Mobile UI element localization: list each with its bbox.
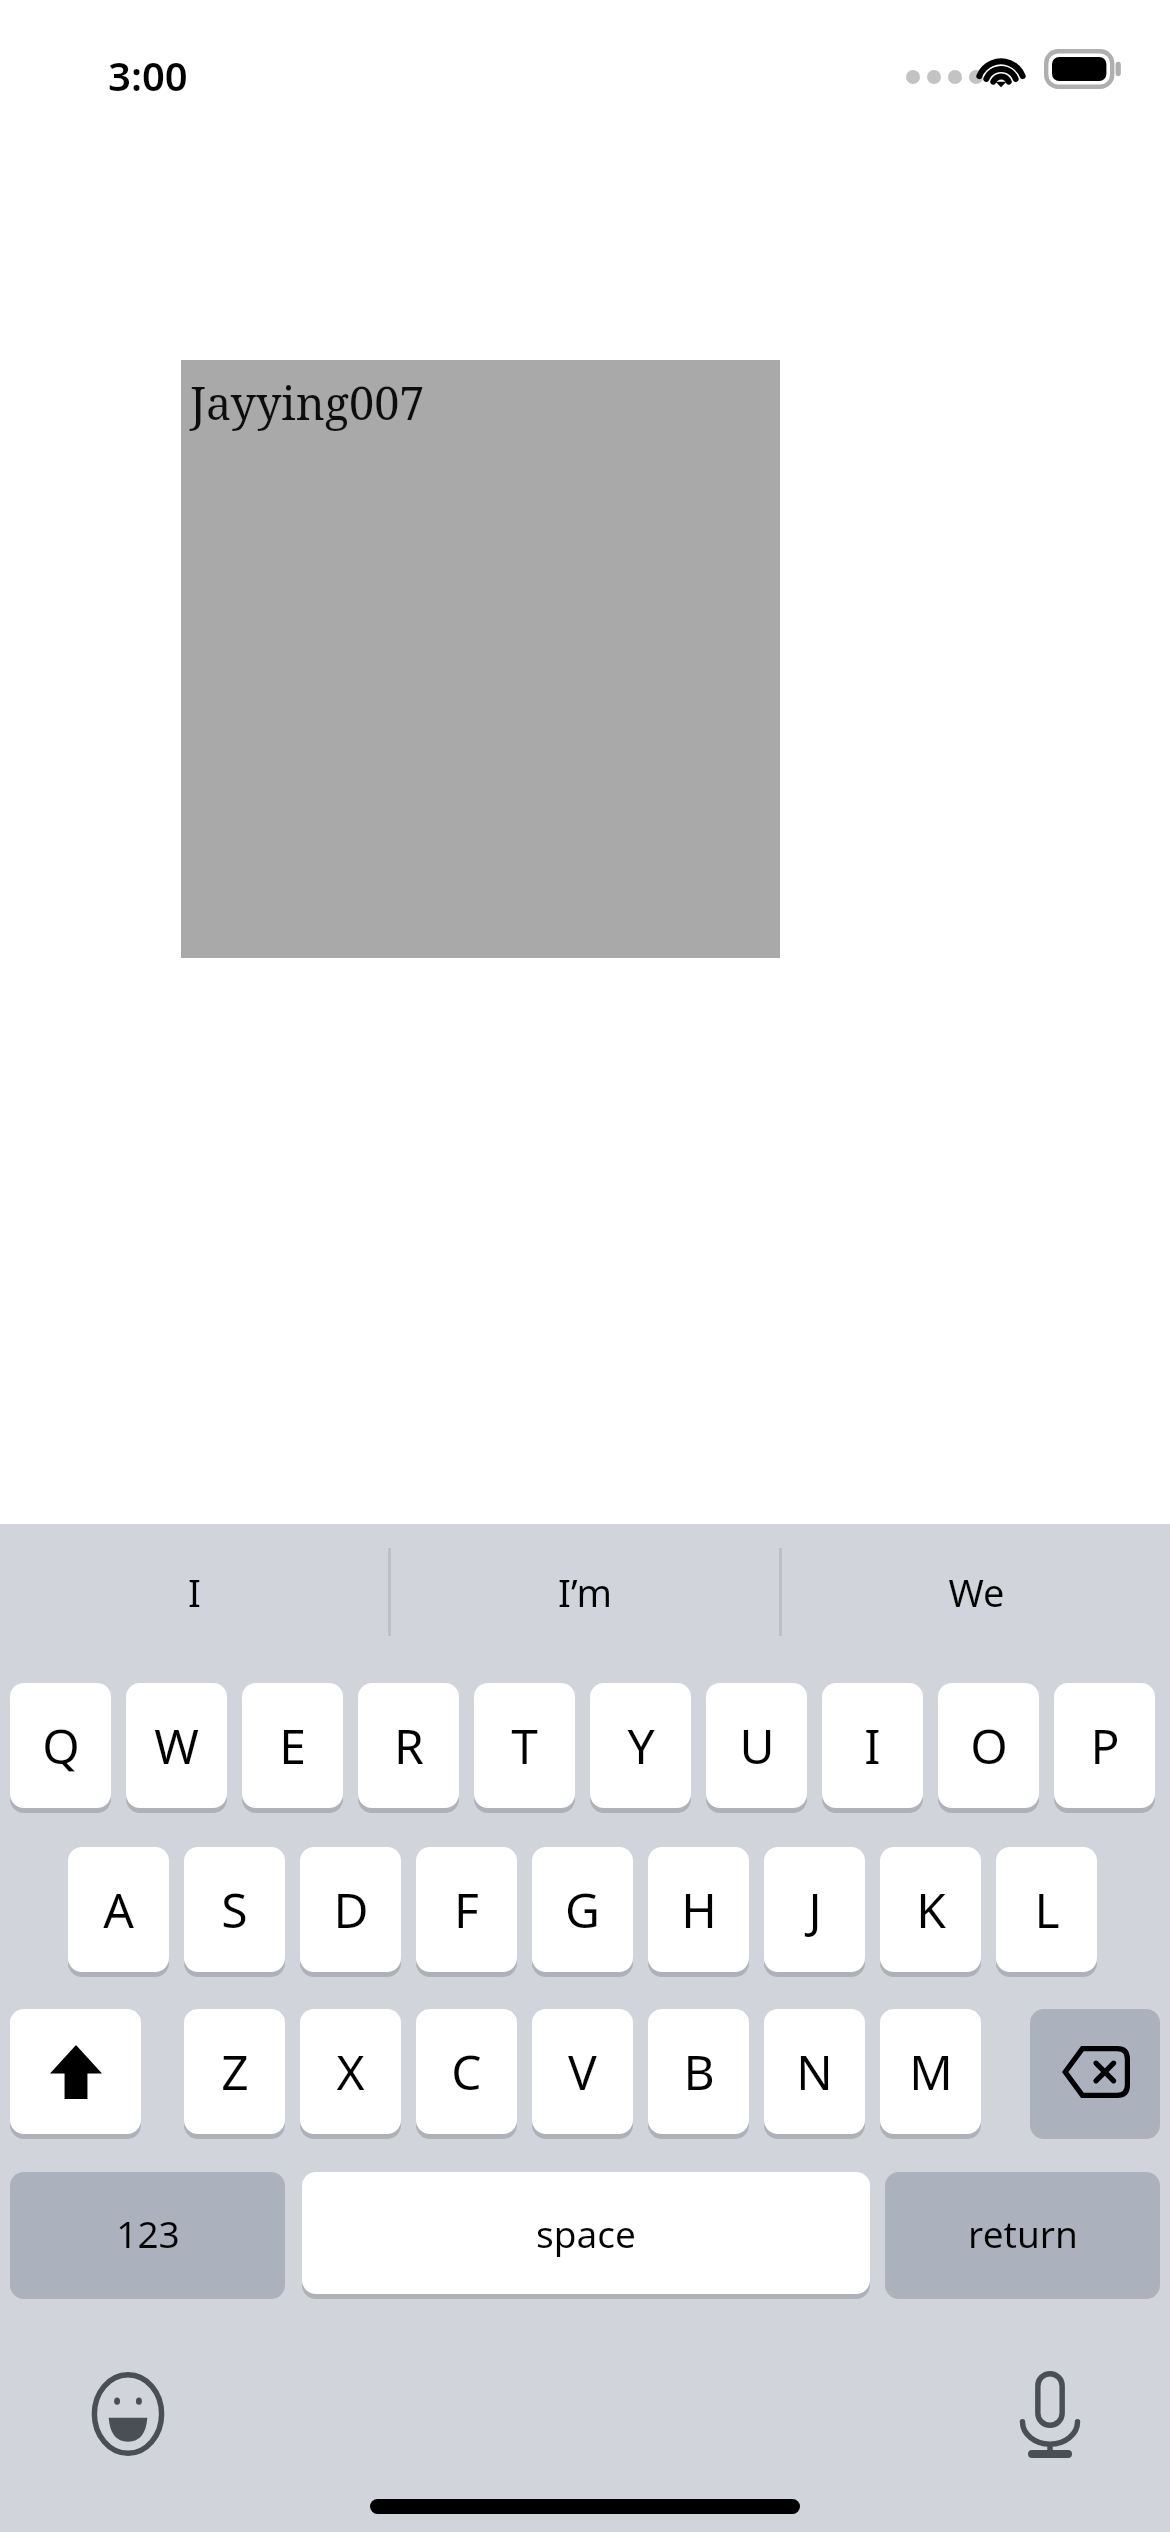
button[interactable]: B xyxy=(648,2009,749,2134)
staticText: Q xyxy=(42,1713,80,1778)
button[interactable]: H xyxy=(648,1847,749,1972)
button[interactable]: return xyxy=(885,2172,1160,2294)
button[interactable]: W xyxy=(126,1683,227,1808)
button[interactable]: S xyxy=(184,1847,285,1972)
staticText: return xyxy=(968,2208,1078,2258)
button[interactable]: T xyxy=(474,1683,575,1808)
staticText: H xyxy=(681,1877,717,1942)
staticText: D xyxy=(333,1877,369,1942)
staticText: O xyxy=(970,1713,1008,1778)
staticText: 123 xyxy=(116,2208,180,2258)
button[interactable]: Jayying007 xyxy=(181,360,780,958)
button[interactable]: 123 xyxy=(10,2172,285,2294)
staticText: B xyxy=(683,2039,715,2104)
staticText: 3:00 xyxy=(108,48,188,102)
staticText: I’m xyxy=(558,1566,612,1618)
button[interactable]: space xyxy=(302,2172,870,2294)
button[interactable]: Dictation xyxy=(1000,2364,1100,2464)
staticText: R xyxy=(394,1713,424,1778)
staticText: C xyxy=(451,2039,482,2104)
button[interactable]: Y xyxy=(590,1683,691,1808)
button[interactable]: We xyxy=(782,1524,1170,1659)
button[interactable]: Q xyxy=(10,1683,111,1808)
button[interactable]: R xyxy=(358,1683,459,1808)
button[interactable]: G xyxy=(532,1847,633,1972)
staticText: W xyxy=(154,1713,199,1778)
staticText: P xyxy=(1090,1713,1120,1778)
staticText: I xyxy=(864,1713,881,1778)
button[interactable]: M xyxy=(880,2009,981,2134)
staticText: I xyxy=(188,1566,201,1618)
button[interactable]: L xyxy=(996,1847,1097,1972)
staticText: M xyxy=(909,2039,953,2104)
button[interactable]: I’m xyxy=(391,1524,779,1659)
button[interactable]: V xyxy=(532,2009,633,2134)
button[interactable]: U xyxy=(706,1683,807,1808)
button[interactable]: Backspace xyxy=(1030,2009,1160,2134)
button[interactable]: F xyxy=(416,1847,517,1972)
button[interactable]: I xyxy=(822,1683,923,1808)
button[interactable]: P xyxy=(1054,1683,1155,1808)
staticText: T xyxy=(511,1713,538,1778)
staticText: S xyxy=(221,1877,248,1942)
button[interactable]: E xyxy=(242,1683,343,1808)
staticText: E xyxy=(279,1713,306,1778)
button[interactable]: K xyxy=(880,1847,981,1972)
staticText: V xyxy=(568,2039,597,2104)
button[interactable]: J xyxy=(764,1847,865,1972)
staticText: Y xyxy=(627,1713,655,1778)
button[interactable]: O xyxy=(938,1683,1039,1808)
staticText: U xyxy=(739,1713,775,1778)
staticText: G xyxy=(565,1877,600,1942)
staticText: A xyxy=(103,1877,134,1942)
staticText: J xyxy=(808,1877,822,1942)
button[interactable]: Z xyxy=(184,2009,285,2134)
staticText: Z xyxy=(221,2039,249,2104)
button[interactable]: Emoji xyxy=(78,2364,178,2464)
button[interactable]: Shift xyxy=(10,2009,141,2134)
staticText: We xyxy=(948,1566,1005,1618)
button[interactable]: N xyxy=(764,2009,865,2134)
staticText: K xyxy=(916,1877,946,1942)
staticText: L xyxy=(1034,1877,1060,1942)
staticText: X xyxy=(336,2039,365,2104)
staticText: N xyxy=(796,2039,833,2104)
button[interactable]: X xyxy=(300,2009,401,2134)
button[interactable]: I xyxy=(0,1524,388,1659)
staticText: F xyxy=(454,1877,479,1942)
staticText: space xyxy=(536,2208,636,2258)
button[interactable]: A xyxy=(68,1847,169,1972)
button[interactable]: D xyxy=(300,1847,401,1972)
button[interactable]: C xyxy=(416,2009,517,2134)
staticText: Jayying007 xyxy=(190,372,425,433)
